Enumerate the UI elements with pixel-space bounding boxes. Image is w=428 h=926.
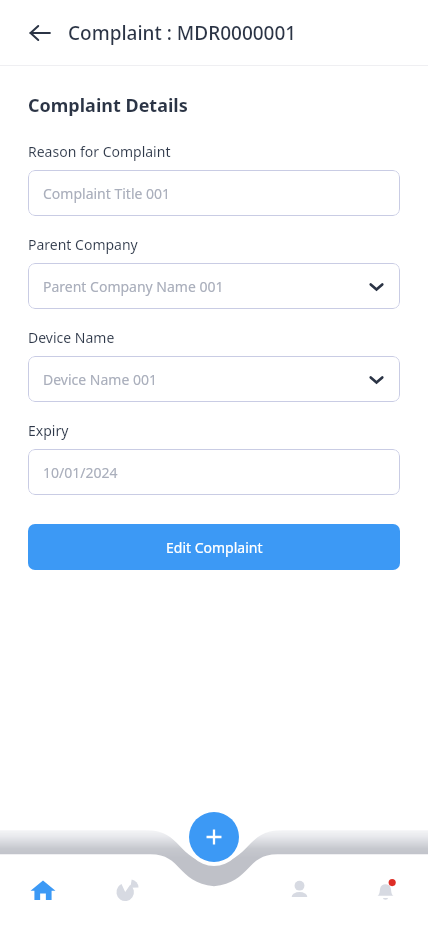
button[interactable]: Parent Company Name 001 (28, 263, 400, 309)
button[interactable]: 10/01/2024 (28, 449, 400, 495)
staticText: Complaint Title 001 (43, 184, 171, 203)
staticText: Complaint : MDR0000001 (68, 20, 297, 46)
button[interactable]: Notifications (342, 854, 428, 926)
button[interactable]: Edit Complaint (28, 524, 400, 570)
staticText: Device Name 001 (43, 370, 157, 389)
staticText: Device Name (28, 328, 115, 347)
staticText: Edit Complaint (166, 538, 263, 557)
button[interactable]: Home (0, 854, 85, 926)
staticText: Parent Company Name 001 (43, 277, 224, 296)
button[interactable]: Back (20, 13, 60, 53)
staticText: Parent Company (28, 235, 138, 254)
button[interactable]: Reports (85, 854, 170, 926)
staticText: Expiry (28, 421, 69, 440)
button[interactable]: Complaint Title 001 (28, 170, 400, 216)
staticText: 10/01/2024 (43, 463, 118, 482)
button[interactable]: Profile (256, 854, 342, 926)
staticText: Reason for Complaint (28, 142, 171, 161)
button[interactable]: Add (189, 812, 239, 862)
staticText: Complaint Details (28, 93, 188, 118)
button[interactable]: Device Name 001 (28, 356, 400, 402)
